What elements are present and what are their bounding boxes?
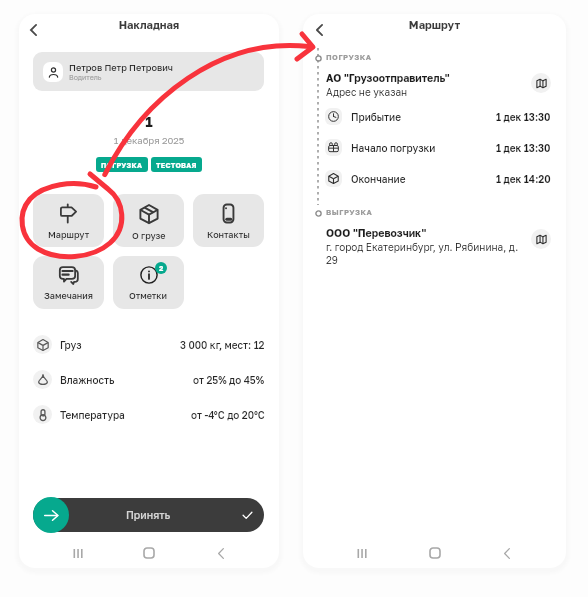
button[interactable]: Влажность [19,362,279,397]
button[interactable]: Home [422,540,448,566]
button[interactable]: 2 [113,256,184,309]
staticText: Накладная [19,18,279,31]
button[interactable]: Back [19,14,47,47]
staticText: ПОГРУЗКА [101,161,143,169]
button[interactable]: Recent apps [349,540,375,566]
staticText: ТЕСТОВАЯ [156,161,197,169]
button[interactable]: Recent apps [65,540,91,566]
staticText: Начало погрузки [351,142,436,154]
staticText: Отметки [129,290,168,301]
staticText: Водитель [69,73,102,81]
staticText: Груз [60,339,82,351]
staticText: 3 000 кг, мест: 12 [180,339,265,351]
button[interactable]: Температура [19,397,279,432]
button[interactable]: Прибытие [325,101,551,132]
staticText: АО "Грузоотправитель" [326,72,450,85]
button[interactable]: Окончание [325,163,551,194]
button[interactable]: О грузе [113,194,184,247]
staticText: Температура [60,409,125,421]
staticText: Петров Петр Петрович [69,62,173,73]
staticText: от -4°C до 20°C [191,409,265,421]
staticText: 1 [19,113,279,130]
button[interactable]: Петров Петр Петрович [33,52,264,91]
button[interactable]: Accept [33,497,69,533]
button[interactable]: Начало погрузки [325,132,551,163]
button[interactable]: ТЕСТОВАЯ [151,157,202,172]
staticText: Контакты [207,229,250,240]
button[interactable]: Замечания [33,256,104,309]
staticText: Маршрут [48,229,90,240]
button[interactable]: Home [136,540,162,566]
staticText: Замечания [44,290,94,301]
staticText: Маршрут [303,18,566,31]
button[interactable]: Груз [19,327,279,362]
button[interactable]: Принять [33,498,264,532]
button[interactable]: ПОГРУЗКА [96,157,148,172]
staticText: ООО "Перевозчик" [326,227,427,240]
staticText: Принять [126,509,171,522]
staticText: 1 декабря 2025 [19,135,279,146]
staticText: г. город Екатеринбург, ул. Рябинина, д. … [326,241,527,267]
staticText: 1 дек 13:30 [496,111,551,123]
staticText: О грузе [132,230,166,241]
staticText: ПОГРУЗКА [326,53,372,62]
button[interactable]: Back [494,540,520,566]
button[interactable]: Back [305,14,333,47]
staticText: ВЫГРУЗКА [326,208,373,217]
button[interactable]: Контакты [193,194,264,247]
button[interactable]: Show on map [531,229,551,249]
staticText: Влажность [60,374,115,386]
button[interactable]: Show on map [531,73,551,93]
button[interactable]: Back [208,540,234,566]
staticText: Адрес не указан [326,86,408,98]
staticText: Прибытие [351,111,401,123]
staticText: от 25% до 45% [193,374,265,386]
staticText: Окончание [351,173,406,185]
staticText: 1 дек 14:20 [496,173,551,185]
staticText: 2 [159,264,164,272]
button[interactable]: Маршрут [33,194,104,247]
staticText: 1 дек 13:30 [496,142,551,154]
